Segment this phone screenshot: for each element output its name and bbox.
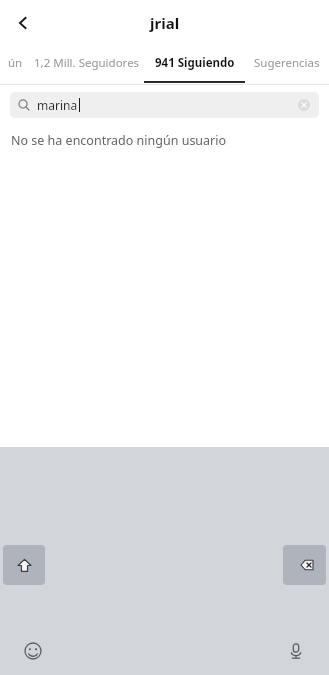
button[interactable]: Emoji — [18, 636, 48, 666]
button[interactable]: 1,2 Mill. Seguidores — [30, 45, 144, 81]
staticText: 941 Siguiendo — [155, 55, 235, 71]
button[interactable]: Clear search — [295, 96, 313, 114]
button[interactable]: Voice input — [281, 636, 311, 666]
button[interactable]: 941 Siguiendo — [144, 45, 245, 81]
staticText: 1,2 Mill. Seguidores — [34, 55, 140, 71]
staticText: Sugerencias — [254, 55, 320, 71]
button[interactable]: Back — [6, 6, 40, 40]
button[interactable]: Shift — [3, 545, 45, 585]
button[interactable]: marina — [10, 92, 319, 118]
staticText: No se ha encontrado ningún usuario — [11, 132, 227, 149]
button[interactable]: Sugerencias — [245, 45, 329, 81]
button[interactable]: Backspace — [283, 545, 326, 585]
button[interactable]: ún — [0, 45, 30, 81]
staticText: jrial — [150, 13, 180, 33]
staticText: marina — [37, 97, 78, 113]
staticText: ún — [8, 55, 23, 71]
